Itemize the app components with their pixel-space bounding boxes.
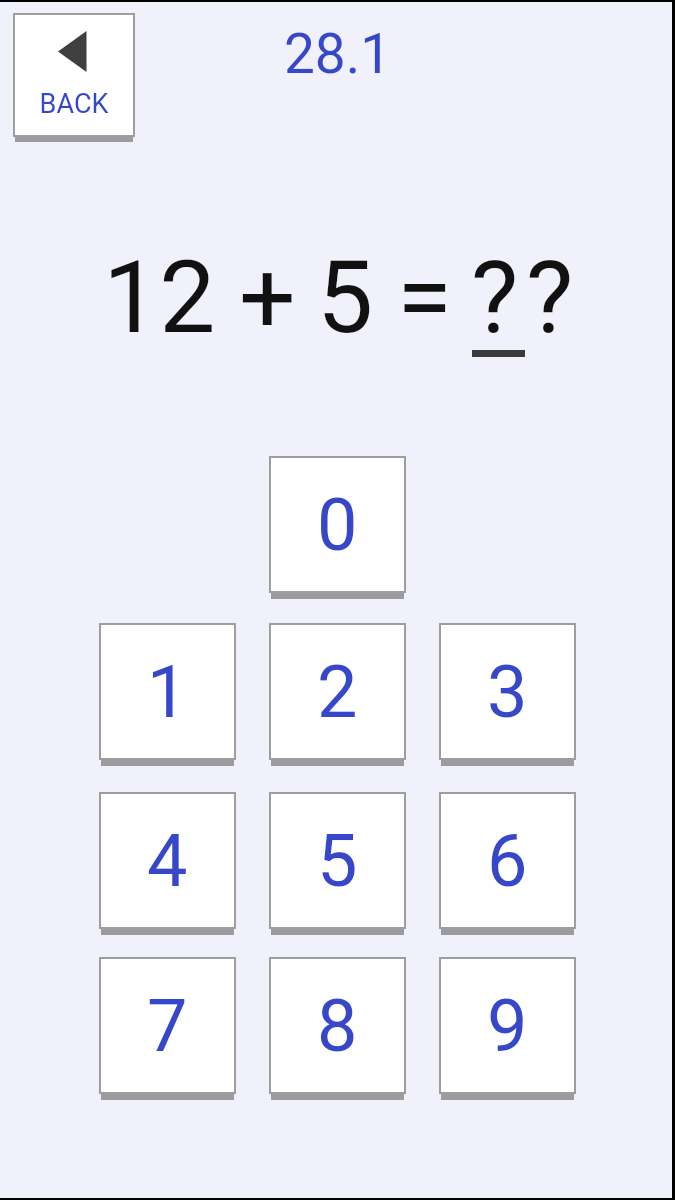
staticText: 5 — [317, 239, 374, 356]
staticText: ? — [526, 239, 574, 356]
staticText: 7 — [147, 984, 188, 1068]
staticText: 5 — [317, 819, 358, 903]
button[interactable]: BACK — [13, 13, 135, 137]
button[interactable]: 2 — [269, 623, 406, 760]
staticText: 4 — [147, 819, 188, 903]
staticText: 8 — [317, 984, 358, 1068]
staticText: + — [239, 239, 296, 356]
staticText: 3 — [487, 650, 528, 734]
button[interactable]: 5 — [269, 792, 406, 929]
staticText: 6 — [487, 819, 528, 903]
staticText: 1 — [147, 650, 188, 734]
staticText: = — [397, 239, 452, 356]
button[interactable]: 4 — [99, 792, 236, 929]
button[interactable]: 7 — [99, 957, 236, 1094]
button[interactable]: 1 — [99, 623, 236, 760]
staticText: 12 — [103, 239, 216, 356]
button[interactable]: 9 — [439, 957, 576, 1094]
staticText: 0 — [317, 483, 358, 567]
staticText: BACK — [13, 88, 135, 120]
staticText: 2 — [317, 650, 358, 734]
button[interactable]: 6 — [439, 792, 576, 929]
staticText: ? — [471, 239, 519, 356]
staticText: 28.1 — [0, 22, 675, 86]
button[interactable]: 8 — [269, 957, 406, 1094]
staticText: 9 — [487, 984, 528, 1068]
button[interactable]: 3 — [439, 623, 576, 760]
button[interactable]: 0 — [269, 456, 406, 593]
